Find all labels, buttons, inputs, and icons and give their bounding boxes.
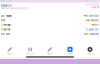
staticText: Phi: (1, 19, 6, 22)
staticText: Balance (1, 4, 12, 7)
button[interactable]: Tu lenh (60, 45, 80, 55)
staticText: Tien rut: (1, 28, 11, 31)
button[interactable]: Cong cu (0, 45, 20, 55)
staticText: Tien nap: (1, 23, 12, 26)
button[interactable]: Giao dich (40, 45, 60, 55)
staticText: NDPRO-MT5 LIVE 2462615 YRD 211172 (1, 8, 30, 10)
staticText: 2021.10.24 10:47:21 (85, 4, 99, 6)
staticText: Tai khoan (86, 53, 93, 55)
staticText: Tu lenh (67, 53, 72, 55)
button[interactable]: Thi truong (20, 45, 40, 55)
staticText: -46 691.00 (83, 14, 99, 17)
staticText: 40 586.49 (84, 33, 99, 36)
staticText: Cong cu (7, 53, 13, 55)
staticText: -9 586.00 (90, 6, 99, 9)
staticText: Loi nhuan: (1, 14, 12, 17)
staticText: So du: (1, 33, 10, 36)
staticText: Thi truong (26, 53, 34, 55)
staticText: -48 195.12 (85, 19, 99, 22)
staticText: 2 891.32 (86, 28, 99, 31)
staticText: -46.27 (91, 23, 99, 26)
button[interactable]: Tai khoan (80, 45, 100, 55)
staticText: Giao dich (47, 53, 53, 55)
